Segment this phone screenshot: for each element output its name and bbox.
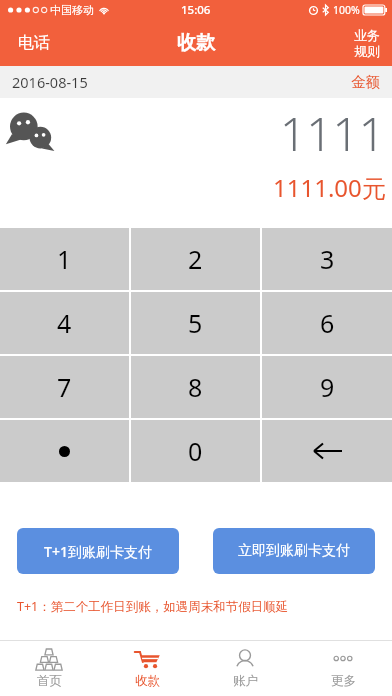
staticText: 6: [320, 306, 335, 340]
button[interactable]: 电话: [0, 20, 68, 66]
staticText: 更多: [331, 673, 356, 689]
button[interactable]: 0: [131, 420, 260, 482]
staticText: 8: [188, 370, 203, 404]
staticText: 账户: [233, 673, 258, 689]
staticText: 9: [320, 370, 335, 404]
button[interactable]: 9: [262, 356, 392, 418]
staticText: 100%: [333, 3, 360, 17]
staticText: T+1到账刷卡支付: [44, 542, 152, 561]
button[interactable]: 1: [0, 228, 129, 290]
button[interactable]: 账户: [196, 641, 294, 696]
button[interactable]: Backspace: [262, 420, 392, 482]
staticText: 电话: [18, 33, 50, 53]
staticText: 立即到账刷卡支付: [238, 542, 350, 560]
staticText: 规则: [354, 43, 380, 59]
staticText: 0: [188, 434, 203, 468]
staticText: 2: [188, 242, 203, 276]
staticText: 中国移动: [50, 3, 94, 17]
button[interactable]: 6: [262, 292, 392, 354]
staticText: 收款: [135, 673, 160, 689]
button[interactable]: T+1到账刷卡支付: [17, 528, 179, 574]
staticText: 2016-08-15: [12, 72, 88, 92]
staticText: 收款: [177, 31, 215, 55]
button[interactable]: 收款: [98, 641, 196, 696]
button[interactable]: 2: [131, 228, 260, 290]
staticText: 1: [57, 242, 72, 276]
button[interactable]: 3: [262, 228, 392, 290]
staticText: 首页: [37, 673, 62, 689]
button[interactable]: 5: [131, 292, 260, 354]
button[interactable]: 更多: [294, 641, 392, 696]
staticText: 业务: [354, 27, 380, 43]
staticText: 1111.00元: [273, 171, 386, 204]
staticText: 5: [188, 306, 203, 340]
staticText: 4: [57, 306, 72, 340]
staticText: 7: [57, 370, 72, 404]
button[interactable]: 8: [131, 356, 260, 418]
button[interactable]: 业务: [342, 20, 392, 66]
button[interactable]: Decimal point: [0, 420, 129, 482]
button[interactable]: 首页: [0, 641, 98, 696]
button[interactable]: 4: [0, 292, 129, 354]
staticText: 15:06: [181, 2, 211, 18]
staticText: T+1：第二个工作日到账，如遇周末和节假日顺延: [17, 598, 392, 615]
button[interactable]: 7: [0, 356, 129, 418]
button[interactable]: 立即到账刷卡支付: [213, 528, 375, 574]
staticText: 1111: [280, 102, 386, 165]
staticText: 3: [320, 242, 335, 276]
staticText: 金额: [351, 73, 380, 91]
